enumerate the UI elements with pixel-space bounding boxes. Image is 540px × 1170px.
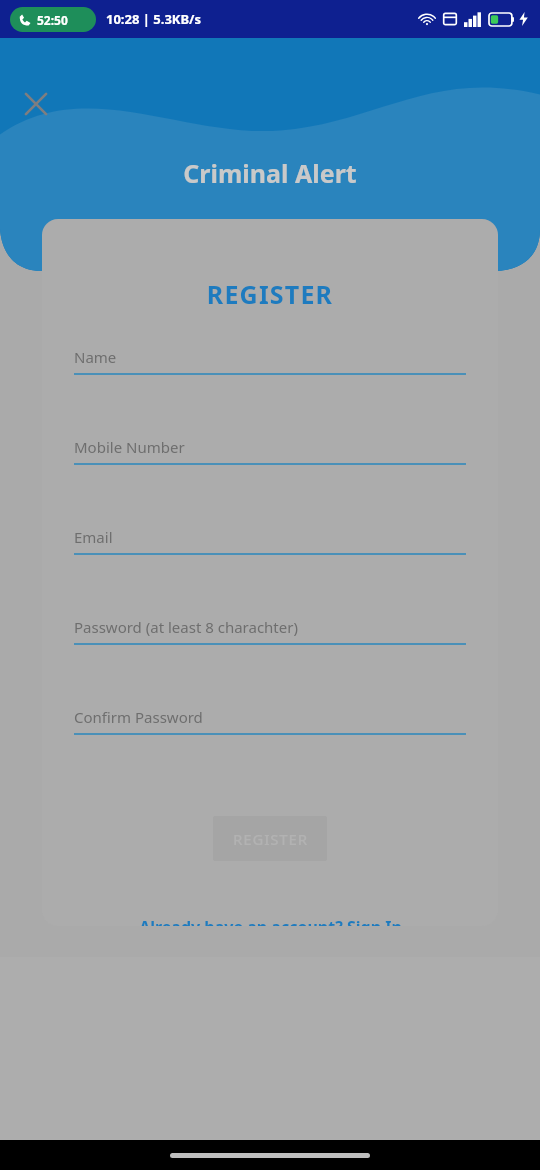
button[interactable]: Confirm Password [74, 707, 466, 797]
staticText: REGISTER [233, 829, 308, 849]
button[interactable]: Name [74, 347, 466, 437]
staticText: Already have an account? Sign In [139, 916, 402, 926]
button[interactable]: Mobile Number [74, 437, 466, 527]
staticText: Mobile Number [74, 437, 185, 457]
staticText: Confirm Password [74, 707, 203, 727]
button[interactable]: Close [14, 82, 58, 126]
staticText: Name [74, 347, 117, 367]
staticText: 52:50 [37, 12, 68, 28]
staticText: Password (at least 8 charachter) [74, 617, 298, 637]
staticText: Email [74, 527, 113, 547]
staticText: REGISTER [42, 277, 498, 311]
button[interactable]: Already have an account? Sign In [42, 916, 498, 926]
staticText: 10:28 | 5.3KB/s [106, 10, 202, 28]
button[interactable]: Email [74, 527, 466, 617]
staticText: Criminal Alert [0, 156, 540, 190]
button[interactable]: Password (at least 8 charachter) [74, 617, 466, 707]
